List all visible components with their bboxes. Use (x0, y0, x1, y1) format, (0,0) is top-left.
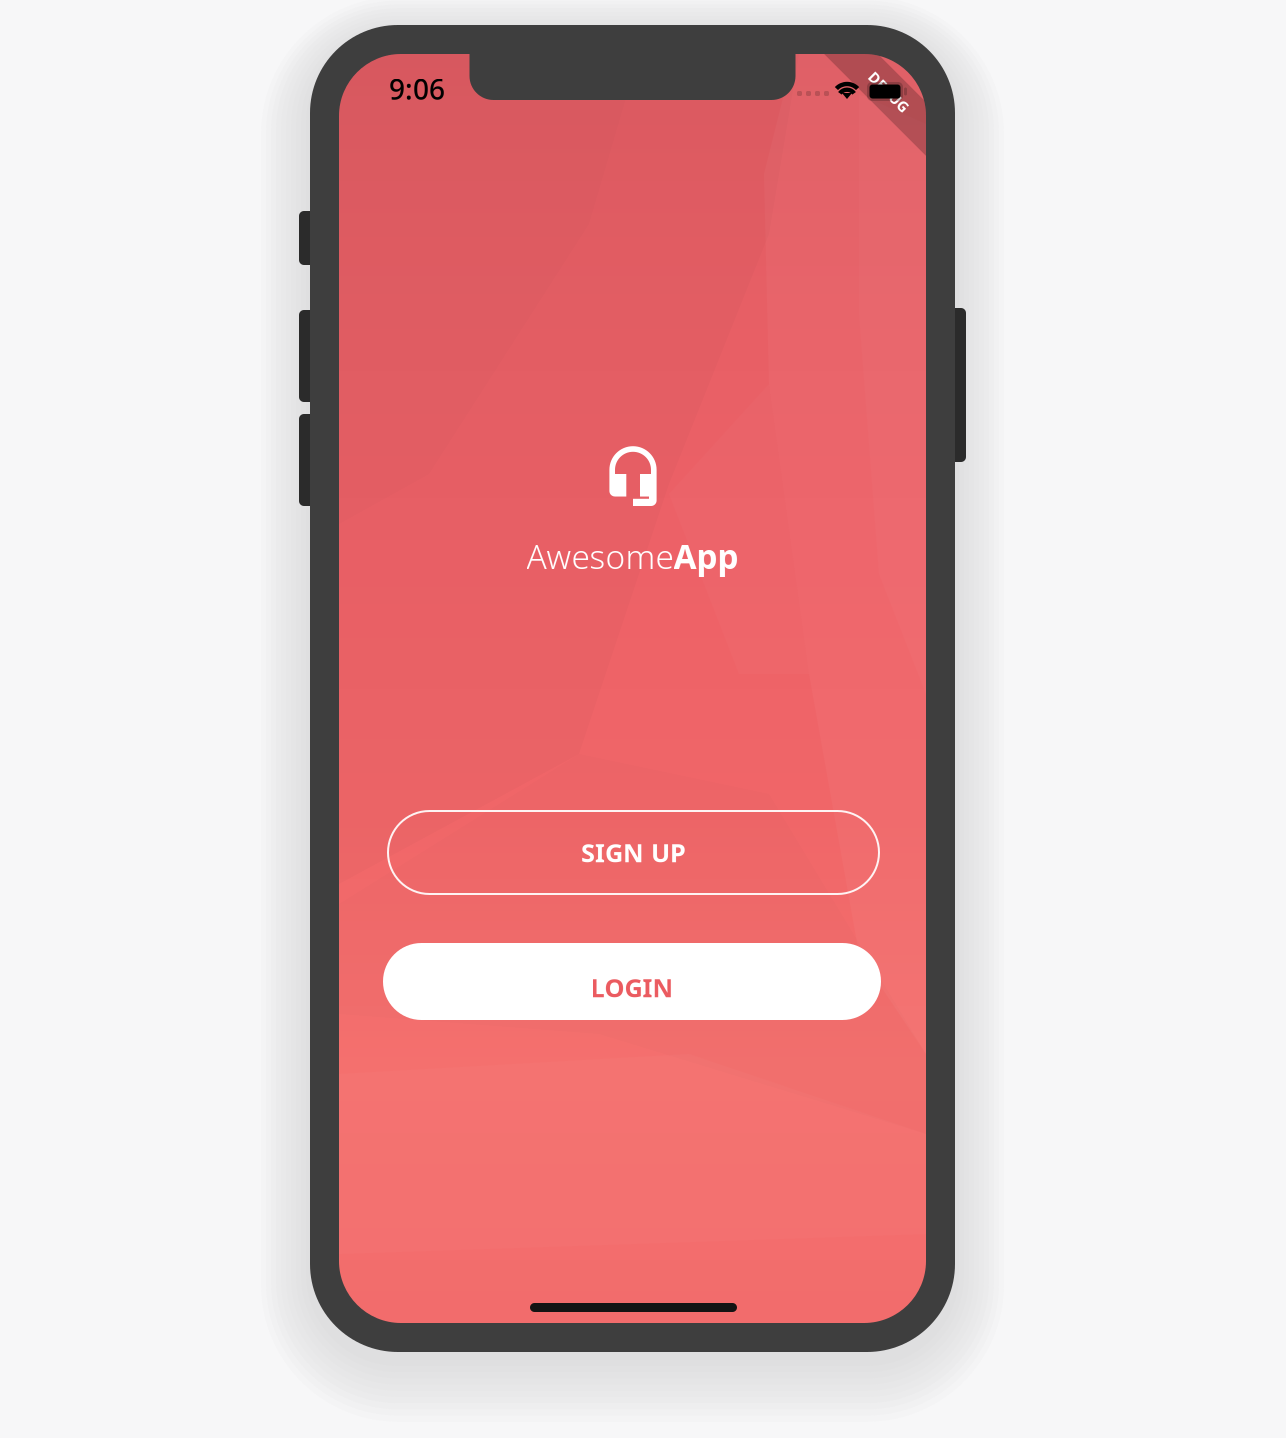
staticText: SIGN UP (581, 836, 686, 869)
button[interactable]: LOGIN (383, 943, 881, 1020)
staticText: AwesomeApp (526, 534, 738, 578)
staticText: DEBUG (863, 82, 914, 102)
staticText: LOGIN (590, 971, 673, 1004)
staticText: 9:06 (389, 70, 445, 108)
button[interactable]: SIGN UP (388, 811, 879, 894)
